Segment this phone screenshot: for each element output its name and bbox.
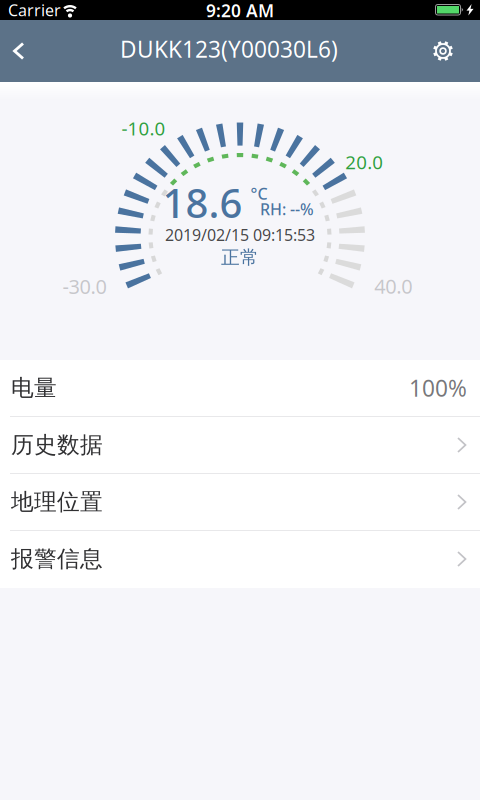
staticText: 电量 xyxy=(11,374,57,402)
button[interactable]: 地理位置 xyxy=(0,474,480,531)
staticText: 历史数据 xyxy=(11,431,103,459)
staticText: 100% xyxy=(409,373,467,403)
button[interactable]: Back xyxy=(0,20,39,82)
button[interactable]: 电量 xyxy=(0,360,480,417)
staticText: 正常 xyxy=(221,246,259,269)
staticText: 20.0 xyxy=(345,150,383,174)
staticText: 地理位置 xyxy=(11,488,103,516)
staticText: DUKK123(Y00030L6) xyxy=(120,34,338,64)
button[interactable]: 报警信息 xyxy=(0,531,480,588)
staticText: -10.0 xyxy=(121,116,165,141)
staticText: 2019/02/15 09:15:53 xyxy=(165,224,315,245)
staticText: -30.0 xyxy=(63,273,107,299)
staticText: 18.6 xyxy=(162,176,242,229)
staticText: Carrier xyxy=(8,0,61,21)
staticText: 40.0 xyxy=(374,273,412,299)
staticText: 报警信息 xyxy=(11,545,103,573)
staticText: RH: --% xyxy=(260,198,314,220)
button[interactable]: 历史数据 xyxy=(0,417,480,474)
button[interactable]: Settings xyxy=(421,29,465,73)
staticText: 9:20 AM xyxy=(206,0,274,22)
staticText: °C xyxy=(250,183,267,204)
